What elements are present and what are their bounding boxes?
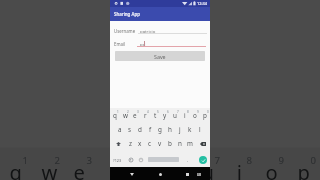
button[interactable]: x [135, 137, 145, 150]
staticText: e [133, 111, 137, 120]
button[interactable]: p [200, 109, 210, 122]
staticText: pd [140, 41, 146, 47]
button[interactable]: l [195, 123, 205, 136]
staticText: 5 [157, 110, 159, 114]
button[interactable]: Shift [113, 137, 123, 150]
staticText: o [266, 157, 278, 180]
staticText: r [109, 157, 118, 180]
button[interactable]: w [32, 151, 64, 180]
staticText: Username [114, 28, 136, 34]
button[interactable]: i [224, 151, 256, 180]
staticText: ?123 [113, 158, 122, 163]
button[interactable]: Emoji [136, 154, 145, 166]
button[interactable]: Back [127, 169, 137, 179]
staticText: . [187, 157, 189, 163]
staticText: 9 [197, 110, 199, 114]
button[interactable]: r [140, 109, 150, 122]
staticText: r [144, 111, 147, 120]
button[interactable]: b [165, 137, 175, 150]
button[interactable]: k [185, 123, 195, 136]
button[interactable]: f [145, 123, 155, 136]
staticText: p [298, 157, 310, 180]
button[interactable]: h [165, 123, 175, 136]
button[interactable]: c [145, 137, 155, 150]
staticText: q [113, 111, 117, 120]
button[interactable]: m [185, 137, 195, 150]
staticText: c [148, 139, 152, 148]
button[interactable]: o [256, 151, 288, 180]
staticText: 0 [310, 154, 317, 167]
staticText: i [184, 111, 186, 120]
staticText: v [158, 139, 162, 148]
staticText: z [129, 139, 132, 148]
staticText: o [193, 111, 197, 120]
button[interactable]: q [110, 109, 120, 122]
button[interactable]: a [115, 123, 125, 136]
button[interactable]: o [190, 109, 200, 122]
button[interactable]: p [288, 151, 320, 180]
staticText: 2 [127, 110, 129, 114]
button[interactable]: z [125, 137, 135, 150]
button[interactable]: w [120, 109, 130, 122]
staticText: m [187, 139, 193, 148]
button[interactable]: Recents [182, 169, 192, 179]
button[interactable]: Home [155, 169, 165, 179]
button[interactable]: u [170, 109, 180, 122]
staticText: 3 [86, 154, 93, 167]
button[interactable]: r [96, 151, 128, 180]
staticText: 4 [118, 154, 125, 167]
button[interactable]: u [192, 151, 224, 180]
button[interactable]: Backspace [196, 137, 209, 150]
staticText: Save [154, 53, 166, 60]
staticText: 8 [187, 110, 189, 114]
staticText: 5 [150, 154, 157, 167]
staticText: Email [114, 41, 126, 47]
button[interactable]: e [64, 151, 96, 180]
button[interactable]: t [150, 109, 160, 122]
staticText: j [179, 125, 181, 134]
staticText: l [199, 125, 201, 134]
staticText: f [149, 125, 152, 134]
staticText: 0 [207, 110, 209, 114]
button[interactable]: e [130, 109, 140, 122]
staticText: w [123, 111, 128, 120]
staticText: 8 [246, 154, 253, 167]
button[interactable]: q [0, 151, 32, 180]
staticText: a [118, 125, 122, 134]
button[interactable]: i [180, 109, 190, 122]
staticText: w [42, 157, 58, 180]
button[interactable]: Sharing App [110, 7, 210, 21]
button[interactable]: d [135, 123, 145, 136]
staticText: h [168, 125, 172, 134]
button[interactable]: v [155, 137, 165, 150]
staticText: patricio [140, 28, 156, 34]
button[interactable]: j [175, 123, 185, 136]
button[interactable]: t [128, 151, 160, 180]
button[interactable]: y [160, 151, 192, 180]
staticText: s [128, 125, 132, 134]
staticText: 1 [117, 110, 119, 114]
staticText: 1 [22, 154, 29, 167]
staticText: 9 [278, 154, 285, 167]
staticText: p [203, 111, 207, 120]
button[interactable]: Enter [197, 154, 208, 165]
button[interactable]: . [184, 154, 191, 166]
staticText: q [10, 157, 22, 180]
button[interactable]: n [175, 137, 185, 150]
button[interactable]: ?123 [111, 154, 124, 166]
staticText: 6 [182, 154, 189, 167]
button[interactable]: Save [115, 51, 205, 61]
staticText: n [178, 139, 182, 148]
button[interactable]: y [160, 109, 170, 122]
button[interactable]: Switch keyboard [194, 169, 204, 179]
staticText: b [168, 139, 172, 148]
button[interactable]: Stickers [126, 154, 135, 166]
staticText: u [202, 157, 214, 180]
button[interactable]: g [155, 123, 165, 136]
staticText: e [74, 157, 86, 180]
button[interactable]: s [125, 123, 135, 136]
staticText: Sharing App [114, 11, 140, 17]
staticText: y [163, 111, 167, 120]
staticText: 7 [177, 110, 179, 114]
